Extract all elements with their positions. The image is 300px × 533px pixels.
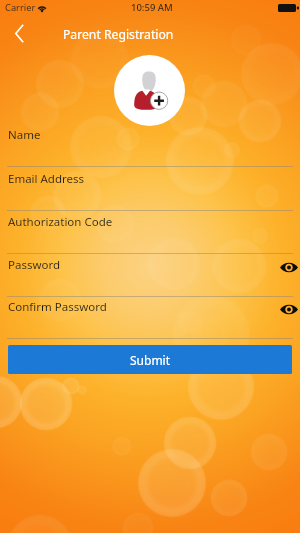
staticText: Name — [8, 127, 41, 143]
staticText: Email Address — [8, 171, 85, 187]
button[interactable]: Add profile photo — [114, 55, 185, 126]
staticText: Carrier — [5, 1, 36, 14]
staticText: Password — [8, 257, 61, 273]
staticText: 10:59 AM — [131, 1, 173, 14]
button[interactable]: Back — [2, 22, 36, 44]
staticText: Confirm Password — [8, 299, 107, 315]
button[interactable]: Show password — [279, 257, 299, 277]
staticText: Submit — [130, 352, 171, 368]
staticText: Parent Registration — [63, 26, 174, 43]
staticText: Authorization Code — [8, 214, 113, 230]
button[interactable]: Submit — [8, 345, 292, 374]
button[interactable]: Show password — [279, 299, 299, 319]
